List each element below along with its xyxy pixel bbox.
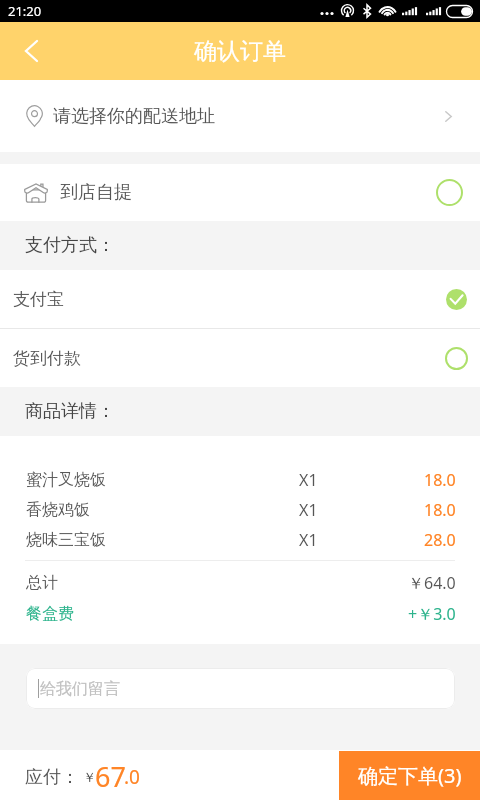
staticText: X1: [299, 499, 318, 521]
staticText: 烧味三宝饭: [26, 530, 106, 550]
button[interactable]: 到店自提: [0, 164, 480, 221]
staticText: 18.0: [424, 469, 456, 491]
staticText: +￥3.0: [408, 603, 456, 625]
staticText: 给我们留言: [40, 679, 120, 699]
staticText: 餐盒费: [26, 604, 74, 624]
staticText: 蜜汁叉烧饭: [26, 470, 106, 490]
staticText: 支付宝: [13, 289, 64, 310]
staticText: 到店自提: [60, 181, 132, 204]
staticText: 确认订单: [194, 37, 286, 66]
staticText: 21:20: [8, 2, 42, 20]
staticText: 商品详情：: [25, 400, 115, 423]
staticText: 应付：: [25, 766, 79, 789]
button[interactable]: Back: [0, 22, 62, 80]
button[interactable]: 请选择你的配送地址: [0, 80, 480, 152]
staticText: ￥64.0: [408, 572, 456, 594]
staticText: 请选择你的配送地址: [53, 105, 215, 128]
button[interactable]: 支付宝: [0, 270, 480, 328]
staticText: 67: [95, 758, 126, 795]
button[interactable]: 确定下单(3): [339, 751, 480, 800]
button[interactable]: 货到付款: [0, 329, 480, 387]
staticText: 确定下单(3): [358, 762, 462, 789]
staticText: .0: [124, 764, 140, 790]
staticText: 18.0: [424, 499, 456, 521]
staticText: X1: [299, 469, 318, 491]
staticText: X1: [299, 529, 318, 551]
staticText: 香烧鸡饭: [26, 500, 90, 520]
staticText: 总计: [26, 573, 58, 593]
staticText: ￥: [83, 769, 96, 785]
staticText: 支付方式：: [25, 234, 115, 257]
button[interactable]: 给我们留言: [26, 668, 455, 709]
staticText: 28.0: [424, 529, 456, 551]
staticText: 货到付款: [13, 348, 81, 369]
